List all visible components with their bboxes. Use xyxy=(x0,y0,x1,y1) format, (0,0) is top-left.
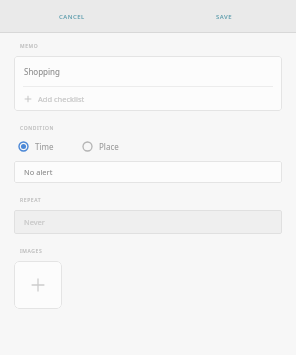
staticText: REPEAT xyxy=(20,197,42,204)
button[interactable]: Time xyxy=(14,138,58,155)
staticText: MEMO xyxy=(20,43,39,50)
staticText: Never xyxy=(24,217,45,227)
button[interactable]: Never xyxy=(14,210,282,234)
staticText: No alert xyxy=(24,167,53,177)
button[interactable]: Add image xyxy=(14,261,62,309)
button[interactable]: No alert xyxy=(14,161,282,183)
staticText: Time xyxy=(35,141,54,152)
staticText: Add checklist xyxy=(38,94,85,104)
staticText: SAVE xyxy=(216,13,233,21)
button[interactable]: Place xyxy=(78,138,123,155)
button[interactable]: Add checklist xyxy=(14,87,282,111)
button[interactable]: Shopping xyxy=(14,56,282,86)
staticText: IMAGES xyxy=(20,248,43,255)
button[interactable]: SAVE xyxy=(209,8,240,26)
staticText: CONDITION xyxy=(20,125,55,132)
staticText: Shopping xyxy=(24,66,60,77)
staticText: CANCEL xyxy=(59,13,85,21)
button[interactable]: CANCEL xyxy=(52,8,92,26)
staticText: Place xyxy=(99,141,119,152)
